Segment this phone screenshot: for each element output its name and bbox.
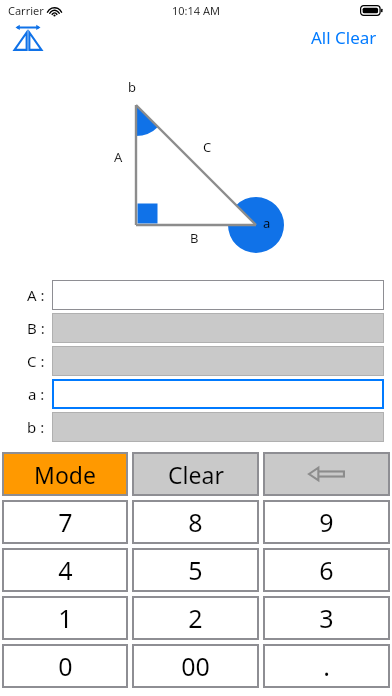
staticText: 0 — [58, 649, 73, 683]
button[interactable]: b : — [0, 412, 392, 442]
button[interactable]: a : — [0, 379, 392, 409]
staticText: B — [190, 229, 199, 247]
staticText: C — [203, 138, 212, 156]
staticText: C : — [27, 351, 45, 371]
staticText: 7 — [58, 505, 73, 539]
button[interactable]: B : — [0, 313, 392, 343]
staticText: Clear — [168, 459, 224, 490]
button[interactable]: Clear — [132, 452, 259, 496]
staticText: a — [263, 214, 271, 232]
button[interactable]: 3 — [263, 596, 390, 640]
staticText: Mode — [34, 459, 96, 490]
staticText: 1 — [58, 601, 73, 635]
button[interactable]: 4 — [2, 548, 128, 592]
button[interactable]: Backspace — [263, 452, 390, 496]
staticText: 6 — [319, 553, 334, 587]
staticText: A : — [27, 285, 45, 305]
button[interactable]: A : — [0, 280, 392, 310]
staticText: 9 — [319, 505, 334, 539]
button[interactable]: 5 — [132, 548, 259, 592]
button[interactable]: 0 — [2, 644, 128, 688]
staticText: b : — [27, 417, 45, 437]
staticText: b — [128, 78, 136, 96]
button[interactable]: Mode — [2, 452, 128, 496]
staticText: a : — [28, 384, 45, 404]
staticText: Carrier — [8, 3, 44, 18]
button[interactable]: . — [263, 644, 390, 688]
button[interactable]: 00 — [132, 644, 259, 688]
button[interactable]: All Clear — [308, 23, 380, 52]
staticText: 8 — [188, 505, 203, 539]
button[interactable]: 7 — [2, 500, 128, 544]
button[interactable]: 1 — [2, 596, 128, 640]
staticText: 4 — [58, 553, 73, 587]
button[interactable]: 8 — [132, 500, 259, 544]
button[interactable]: Mirror mode — [11, 21, 45, 53]
button[interactable]: 6 — [263, 548, 390, 592]
button[interactable]: 9 — [263, 500, 390, 544]
button[interactable]: 2 — [132, 596, 259, 640]
staticText: 5 — [188, 553, 203, 587]
staticText: . — [323, 649, 330, 683]
staticText: B : — [27, 318, 45, 338]
staticText: 2 — [188, 601, 203, 635]
staticText: 10:14 AM — [172, 3, 220, 18]
staticText: 00 — [181, 649, 210, 683]
staticText: All Clear — [311, 26, 377, 49]
button[interactable]: C : — [0, 346, 392, 376]
staticText: A — [114, 148, 123, 166]
staticText: 3 — [319, 601, 334, 635]
